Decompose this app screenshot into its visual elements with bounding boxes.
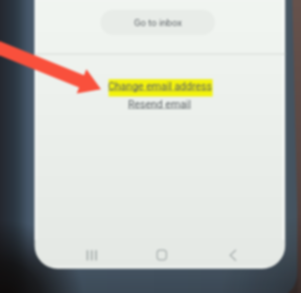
button[interactable]: Home <box>150 244 174 266</box>
button[interactable]: Change email address <box>105 77 215 94</box>
staticText: Resend email <box>128 98 191 110</box>
staticText: Go to inbox <box>134 17 182 28</box>
button[interactable]: Recents <box>80 244 104 266</box>
staticText: Change email address <box>108 80 212 92</box>
button[interactable]: Go to inbox <box>101 10 215 35</box>
button[interactable]: Back <box>221 244 245 266</box>
button[interactable]: Resend email <box>119 96 199 112</box>
